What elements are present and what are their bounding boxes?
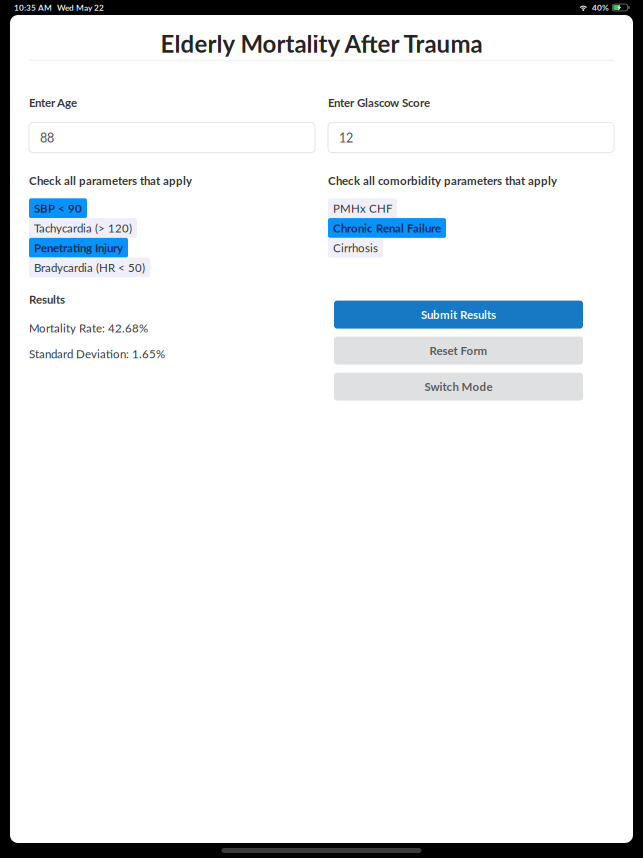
- staticText: Enter Glascow Score: [328, 96, 430, 110]
- staticText: Tachycardia (> 120): [34, 221, 132, 235]
- staticText: Enter Age: [29, 96, 77, 110]
- button[interactable]: Submit Results: [334, 301, 583, 329]
- staticText: Wed May 22: [57, 2, 104, 12]
- staticText: Results: [29, 292, 65, 306]
- staticText: Cirrhosis: [333, 241, 378, 255]
- button[interactable]: Penetrating Injury: [29, 238, 128, 258]
- staticText: 88: [40, 130, 54, 145]
- staticText: 40%: [592, 2, 609, 12]
- staticText: Check all comorbidity parameters that ap…: [328, 174, 557, 187]
- button[interactable]: Enter Glascow Score: [328, 123, 614, 153]
- staticText: Bradycardia (HR < 50): [34, 261, 145, 274]
- staticText: Mortality Rate: 42.68%: [29, 321, 148, 335]
- button[interactable]: Cirrhosis: [328, 238, 383, 258]
- button[interactable]: PMHx CHF: [328, 198, 397, 218]
- staticText: 12: [339, 130, 353, 145]
- staticText: Elderly Mortality After Trauma: [160, 29, 482, 58]
- button[interactable]: Chronic Renal Failure: [328, 218, 446, 238]
- staticText: Chronic Renal Failure: [333, 221, 441, 235]
- staticText: SBP < 90: [34, 201, 82, 215]
- button[interactable]: Bradycardia (HR < 50): [29, 258, 150, 277]
- staticText: 10:35 AM: [14, 2, 52, 12]
- staticText: Switch Mode: [424, 380, 492, 393]
- staticText: PMHx CHF: [333, 201, 392, 215]
- button[interactable]: Tachycardia (> 120): [29, 218, 137, 238]
- staticText: Penetrating Injury: [34, 241, 123, 255]
- staticText: Standard Deviation: 1.65%: [29, 347, 165, 361]
- button[interactable]: SBP < 90: [29, 198, 87, 218]
- staticText: Submit Results: [421, 308, 496, 321]
- staticText: Reset Form: [429, 344, 487, 357]
- staticText: Check all parameters that apply: [29, 174, 192, 187]
- button[interactable]: Enter Age: [29, 123, 315, 153]
- button[interactable]: Reset Form: [334, 337, 583, 365]
- button[interactable]: Switch Mode: [334, 373, 583, 401]
